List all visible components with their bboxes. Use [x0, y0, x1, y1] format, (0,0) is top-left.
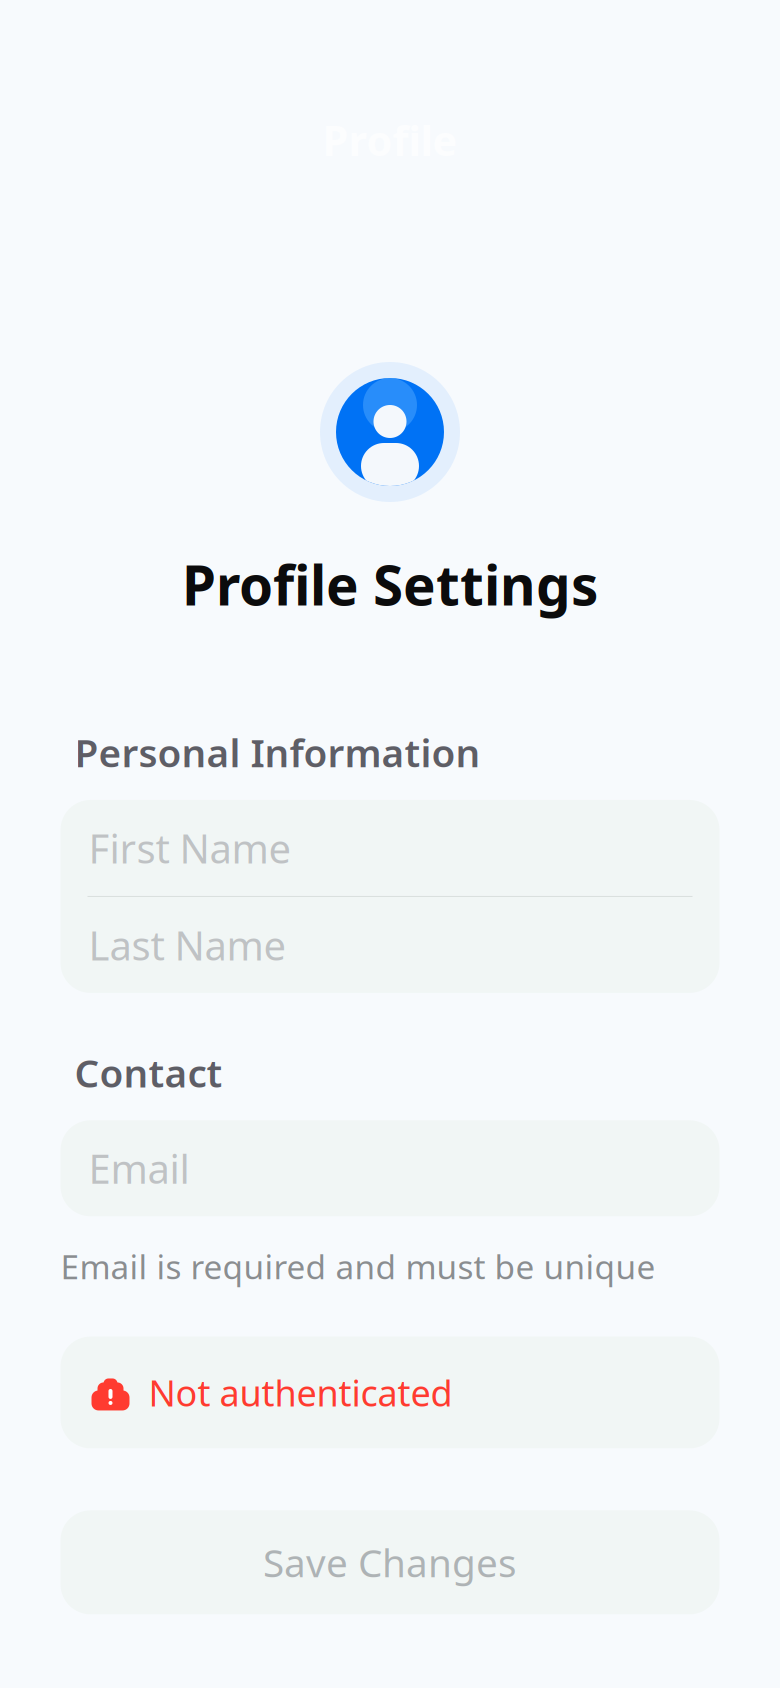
staticText: Personal Information [74, 727, 480, 778]
button[interactable]: Email [60, 1120, 719, 1216]
button[interactable]: Not authenticated [60, 1337, 719, 1448]
button[interactable]: First Name [60, 800, 719, 896]
staticText: Profile Settings [182, 548, 598, 621]
staticText: Last Name [88, 918, 286, 971]
staticText: Save Changes [263, 1537, 517, 1588]
staticText: Email [88, 1142, 189, 1195]
staticText: Contact [74, 1047, 222, 1098]
button[interactable]: Save Changes [60, 1510, 719, 1614]
staticText: First Name [88, 821, 291, 874]
staticText: Not authenticated [148, 1369, 452, 1416]
button[interactable]: Last Name [60, 897, 719, 993]
staticText: Email is required and must be unique [60, 1244, 655, 1289]
